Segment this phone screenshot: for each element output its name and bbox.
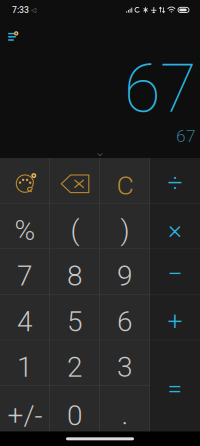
staticText: 1 bbox=[17, 351, 33, 384]
staticText: 7 bbox=[17, 260, 33, 292]
button[interactable]: 2 bbox=[50, 340, 100, 386]
staticText: 4 bbox=[17, 305, 33, 338]
button[interactable]: × bbox=[150, 204, 200, 249]
staticText: ( bbox=[70, 214, 79, 247]
button[interactable]: Delete bbox=[50, 158, 100, 204]
staticText: = bbox=[167, 373, 182, 405]
staticText: ÷ bbox=[167, 167, 182, 198]
button[interactable]: ÷ bbox=[150, 158, 200, 204]
staticText: − bbox=[167, 258, 182, 290]
button[interactable]: C bbox=[100, 158, 150, 204]
staticText: 6 bbox=[117, 305, 133, 338]
button[interactable]: +/- bbox=[0, 386, 50, 432]
staticText: . bbox=[121, 398, 128, 431]
staticText: ◁ bbox=[29, 6, 36, 14]
staticText: 0 bbox=[67, 399, 83, 432]
button[interactable]: 8 bbox=[50, 249, 100, 295]
staticText: 8 bbox=[67, 260, 83, 292]
button[interactable]: 5 bbox=[50, 295, 100, 340]
button[interactable]: 4 bbox=[0, 295, 50, 340]
button[interactable]: 1 bbox=[0, 340, 50, 386]
staticText: 3 bbox=[117, 351, 133, 384]
button[interactable]: 9 bbox=[100, 249, 150, 295]
button[interactable]: Themes bbox=[0, 158, 50, 204]
button[interactable]: = bbox=[150, 340, 200, 432]
button[interactable]: ( bbox=[50, 204, 100, 249]
staticText: 67 bbox=[176, 126, 196, 146]
button[interactable]: . bbox=[100, 386, 150, 432]
staticText: 2 bbox=[67, 351, 83, 384]
button[interactable]: Menu bbox=[0, 24, 30, 50]
staticText: ) bbox=[120, 214, 129, 247]
staticText: 67 bbox=[124, 50, 196, 128]
button[interactable]: − bbox=[150, 249, 200, 295]
button[interactable]: % bbox=[0, 204, 50, 249]
button[interactable]: + bbox=[150, 295, 200, 340]
staticText: 7:33 bbox=[12, 5, 29, 15]
button[interactable]: ) bbox=[100, 204, 150, 249]
staticText: + bbox=[167, 305, 182, 336]
button[interactable]: 7 bbox=[0, 249, 50, 295]
staticText: × bbox=[168, 214, 182, 245]
staticText: 9 bbox=[117, 260, 133, 292]
staticText: C bbox=[116, 170, 133, 201]
button[interactable]: 6 bbox=[100, 295, 150, 340]
button[interactable]: 0 bbox=[50, 386, 100, 432]
button[interactable]: 3 bbox=[100, 340, 150, 386]
staticText: +/- bbox=[7, 399, 42, 432]
staticText: 5 bbox=[67, 305, 83, 338]
staticText: % bbox=[14, 214, 35, 247]
